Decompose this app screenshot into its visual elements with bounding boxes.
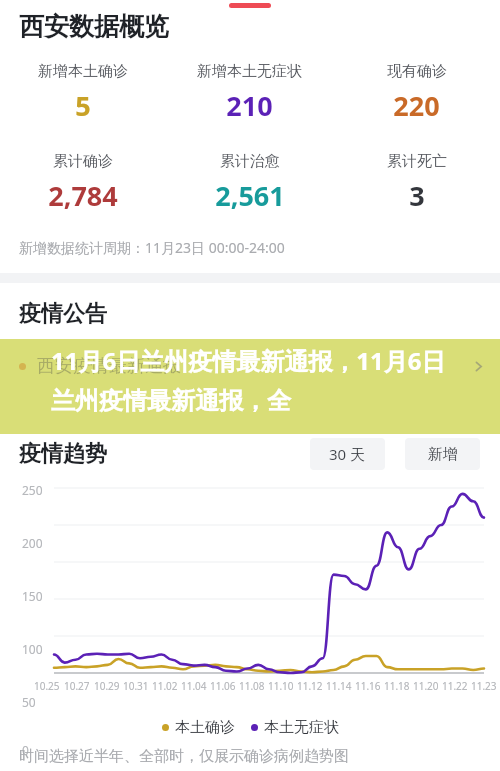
button[interactable]: 新增本土无症状 xyxy=(166,62,333,124)
staticText: 3 xyxy=(409,177,425,214)
staticText: 本土确诊 xyxy=(175,718,235,737)
staticText: 0 xyxy=(22,742,29,758)
staticText: 150 xyxy=(22,588,43,604)
staticText: 220 xyxy=(393,87,440,124)
staticText: 疫情趋势 xyxy=(19,440,107,468)
button[interactable]: 新增本土确诊 xyxy=(0,62,166,124)
staticText: 10.31 xyxy=(123,679,149,693)
staticText: 11.10 xyxy=(268,679,294,693)
staticText: 11.06 xyxy=(210,679,236,693)
staticText: 200 xyxy=(22,535,43,551)
staticText: 疫情公告 xyxy=(19,300,107,328)
staticText: 新增本土无症状 xyxy=(197,62,302,81)
staticText: 5 xyxy=(75,87,91,124)
staticText: 2,784 xyxy=(48,177,118,214)
staticText: 250 xyxy=(22,482,43,498)
staticText: 10.27 xyxy=(64,679,90,693)
button[interactable]: 新增 xyxy=(405,438,480,470)
button[interactable]: 累计死亡 xyxy=(333,152,500,214)
staticText: 新增本土确诊 xyxy=(38,62,128,81)
staticText: 11.20 xyxy=(413,679,439,693)
staticText: 时间选择近半年、全部时，仅展示确诊病例趋势图 xyxy=(19,747,349,766)
staticText: 11月6日兰州疫情最新通报，11月6日兰州疫情最新通报，全 xyxy=(51,344,462,416)
staticText: 11.02 xyxy=(152,679,178,693)
staticText: 100 xyxy=(22,641,43,657)
staticText: 11.14 xyxy=(326,679,352,693)
staticText: 累计治愈 xyxy=(220,152,280,171)
button[interactable]: 现有确诊 xyxy=(333,62,500,124)
staticText: 30 天 xyxy=(329,444,366,464)
staticText: 11.23 xyxy=(471,679,497,693)
button[interactable]: 累计治愈 xyxy=(166,152,333,214)
staticText: 50 xyxy=(22,694,36,710)
staticText: 本土无症状 xyxy=(264,718,339,737)
button[interactable]: 累计确诊 xyxy=(0,152,166,214)
staticText: 210 xyxy=(226,87,273,124)
staticText: 累计确诊 xyxy=(53,152,113,171)
staticText: 11.12 xyxy=(297,679,323,693)
other: Open announcement xyxy=(471,359,486,374)
button[interactable]: 30 天 xyxy=(310,438,385,470)
staticText: 11.22 xyxy=(442,679,468,693)
staticText: 西安疫情最新通报 xyxy=(37,355,181,378)
staticText: 11.08 xyxy=(239,679,265,693)
staticText: 新增数据统计周期：11月23日 00:00-24:00 xyxy=(19,238,285,257)
button[interactable]: Selected tab indicator xyxy=(229,3,271,8)
staticText: 11.16 xyxy=(355,679,381,693)
button[interactable]: 西安疫情最新通报 xyxy=(0,339,500,434)
staticText: 11.04 xyxy=(181,679,207,693)
staticText: 现有确诊 xyxy=(387,62,447,81)
staticText: 10.29 xyxy=(94,679,120,693)
staticText: 累计死亡 xyxy=(387,152,447,171)
staticText: 11.18 xyxy=(384,679,410,693)
staticText: 西安数据概览 xyxy=(19,11,169,42)
staticText: 10.25 xyxy=(34,679,60,693)
staticText: 2,561 xyxy=(215,177,285,214)
staticText: 新增 xyxy=(428,445,458,464)
